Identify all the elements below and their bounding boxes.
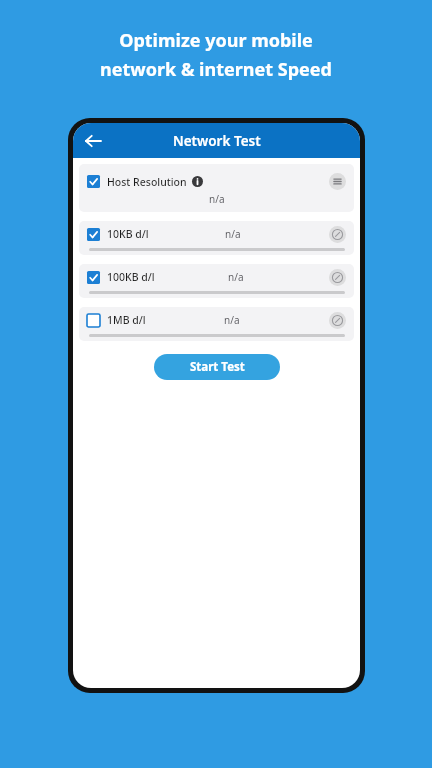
button[interactable]: 10KB d/l [79, 221, 354, 255]
staticText: 100KB d/l [107, 270, 155, 284]
staticText: n/a [224, 313, 240, 327]
button[interactable]: Host Resolution [79, 164, 354, 212]
staticText: network & internet Speed [100, 57, 332, 82]
button[interactable]: 100KB d/l [79, 264, 354, 298]
button[interactable]: Run test [329, 312, 346, 329]
button[interactable]: Run test [329, 226, 346, 243]
staticText: 1MB d/l [107, 313, 146, 327]
staticText: n/a [228, 270, 244, 284]
button[interactable]: Back [79, 127, 107, 155]
staticText: Network Test [173, 132, 261, 150]
staticText: Host Resolution [107, 175, 187, 189]
staticText: 10KB d/l [107, 227, 149, 241]
button[interactable]: 1MB d/l [79, 307, 354, 341]
staticText: n/a [209, 192, 225, 206]
button[interactable]: Menu [329, 173, 346, 190]
staticText: n/a [225, 227, 241, 241]
button[interactable]: Run test [329, 269, 346, 286]
button[interactable]: Start Test [154, 354, 280, 380]
staticText: Optimize your mobile [119, 28, 313, 53]
staticText: Start Test [190, 359, 245, 375]
